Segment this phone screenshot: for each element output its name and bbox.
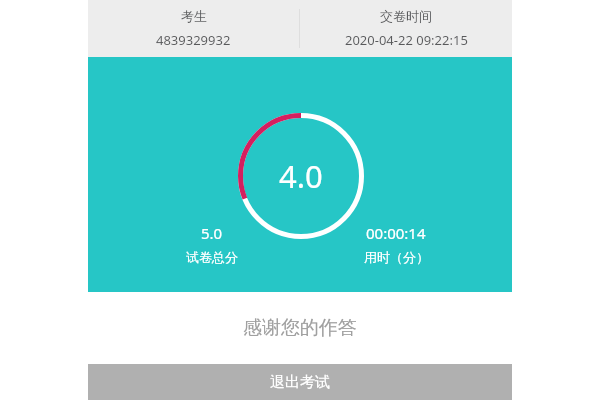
button[interactable]: 退出考试 <box>88 364 512 400</box>
staticText: 考生 <box>181 8 207 24</box>
staticText: 4.0 <box>279 155 323 197</box>
staticText: 退出考试 <box>270 373 330 392</box>
staticText: 感谢您的作答 <box>243 316 357 340</box>
staticText: 00:00:14 <box>366 223 426 243</box>
staticText: 5.0 <box>201 223 223 243</box>
staticText: 试卷总分 <box>186 249 238 265</box>
staticText: 交卷时间 <box>380 8 432 24</box>
staticText: 2020-04-22 09:22:15 <box>345 31 468 49</box>
staticText: 4839329932 <box>156 31 231 49</box>
staticText: 用时（分） <box>364 249 429 265</box>
